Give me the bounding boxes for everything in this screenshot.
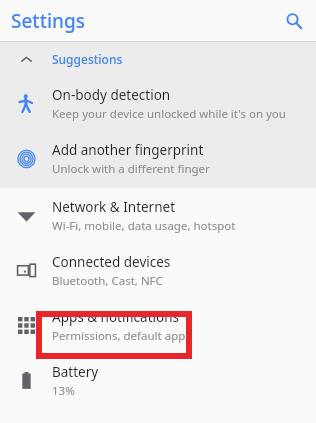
staticText: Connected devices bbox=[52, 253, 171, 271]
staticText: Permissions, default apps bbox=[52, 328, 191, 344]
staticText: Keep your device unlocked while it's on … bbox=[52, 106, 286, 122]
button[interactable]: Network & Internet bbox=[0, 188, 316, 243]
button[interactable]: Connected devices bbox=[0, 243, 316, 298]
staticText: Unlock with a different finger bbox=[52, 161, 210, 177]
staticText: 13% bbox=[52, 383, 75, 399]
button[interactable]: Suggestions bbox=[0, 42, 316, 76]
staticText: Settings bbox=[11, 8, 85, 34]
button[interactable]: Search bbox=[277, 4, 311, 38]
staticText: Bluetooth, Cast, NFC bbox=[52, 273, 163, 289]
staticText: Battery bbox=[52, 363, 99, 381]
button[interactable]: Battery bbox=[0, 353, 316, 408]
staticText: On-body detection bbox=[52, 86, 171, 104]
staticText: Apps & notifications bbox=[52, 308, 179, 326]
button[interactable]: On-body detection bbox=[0, 76, 316, 131]
staticText: Suggestions bbox=[52, 51, 123, 67]
staticText: Add another fingerprint bbox=[52, 141, 204, 159]
staticText: Network & Internet bbox=[52, 198, 176, 216]
button[interactable]: Add another fingerprint bbox=[0, 131, 316, 186]
button[interactable]: Apps & notifications bbox=[0, 298, 316, 353]
staticText: Wi-Fi, mobile, data usage, hotspot bbox=[52, 218, 236, 234]
